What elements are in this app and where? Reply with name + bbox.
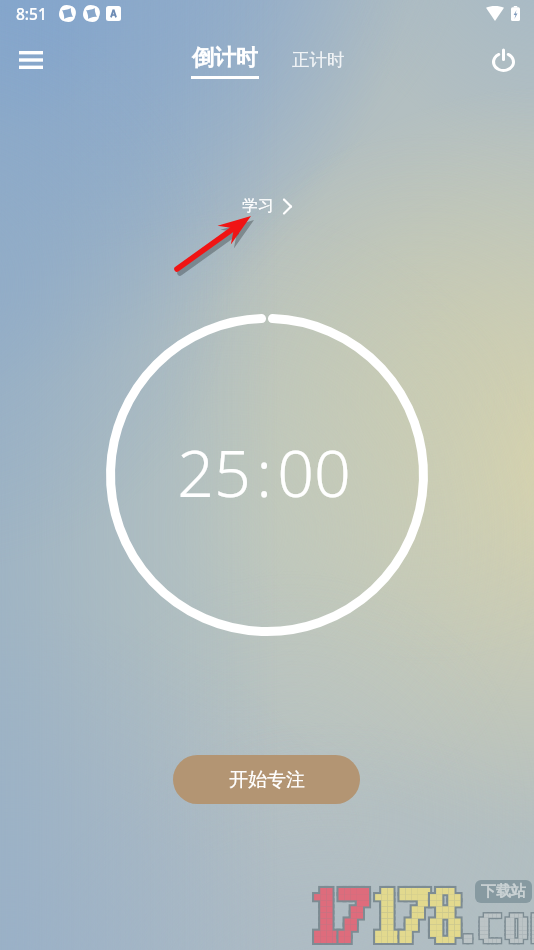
- button[interactable]: Power: [480, 37, 526, 83]
- button[interactable]: 正计时: [286, 43, 351, 77]
- button[interactable]: 学习: [234, 191, 300, 221]
- staticText: 学习: [242, 196, 274, 216]
- staticText: 正计时: [292, 49, 345, 71]
- button[interactable]: 开始专注: [173, 755, 360, 804]
- staticText: 00: [277, 428, 351, 516]
- button[interactable]: Menu: [8, 37, 54, 83]
- staticText: 下载站: [481, 882, 526, 901]
- staticText: 8:51: [16, 3, 47, 24]
- staticText: 倒计时: [192, 44, 258, 72]
- staticText: :: [256, 428, 272, 516]
- button[interactable]: 倒计时: [185, 44, 265, 79]
- staticText: 开始专注: [229, 768, 305, 792]
- staticText: 25: [177, 428, 251, 516]
